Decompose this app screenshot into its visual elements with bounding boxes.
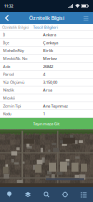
staticText: 3.150,00: [43, 79, 57, 85]
staticText: Mevkii/Sk. No: [3, 56, 27, 61]
staticText: 11:32: [4, 3, 13, 9]
staticText: 26842: [43, 64, 53, 69]
staticText: 4: [43, 72, 45, 77]
staticText: Ada: [3, 64, 10, 69]
staticText: Nitelik: [3, 87, 14, 93]
staticText: Merkez: [43, 56, 57, 61]
staticText: Ana Taşınmaz: [43, 103, 68, 108]
staticText: Mevkii: [3, 95, 15, 101]
staticText: İl: [3, 32, 5, 37]
button[interactable]: Tescil Bilgileri: [33, 24, 58, 31]
staticText: Mahalle/Köy: [3, 48, 24, 53]
staticText: İlçe: [3, 40, 9, 45]
button[interactable]: Ara: [37, 187, 56, 202]
staticText: Kodu: [3, 111, 11, 116]
button[interactable]: Menu: [80, 12, 91, 24]
button[interactable]: Back: [1, 12, 12, 24]
button[interactable]: Konum: [0, 187, 19, 202]
staticText: Zemin Tipi: [3, 103, 21, 108]
button[interactable]: Öznitelik Bilgisi: [2, 24, 29, 31]
staticText: Öznitelik Bilgisi: [2, 25, 29, 30]
staticText: Yüz Ölçümü: [3, 79, 24, 85]
staticText: Arsa: [43, 87, 52, 93]
staticText: Parsel: [3, 72, 14, 77]
button[interactable]: Menü: [74, 187, 93, 202]
button[interactable]: Konumum: [56, 187, 74, 202]
button[interactable]: Katmanlar: [19, 187, 37, 202]
staticText: Tescil Bilgileri: [33, 25, 58, 30]
staticText: 1: [43, 111, 45, 116]
staticText: Çankaya: [43, 40, 58, 45]
staticText: Taşınmaza Git: [33, 121, 60, 126]
staticText: Ankara: [43, 32, 56, 37]
staticText: Birlik: [43, 48, 53, 53]
button[interactable]: Taşınmaza Git: [0, 118, 93, 129]
staticText: Öznitelik Bilgisi: [29, 14, 64, 22]
